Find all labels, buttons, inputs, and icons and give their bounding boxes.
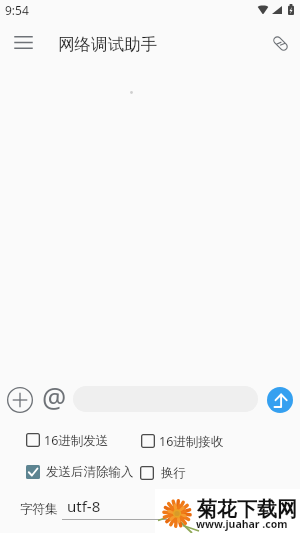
staticText: @: [42, 379, 67, 410]
button[interactable]: 16进制接收: [141, 431, 224, 451]
staticText: 网络调试助手: [58, 34, 157, 55]
staticText: 菊花下载网: [197, 497, 297, 522]
staticText: 16进制接收: [159, 433, 224, 450]
button[interactable]: Menu: [11, 30, 36, 55]
staticText: 发送后清除输入: [46, 464, 134, 480]
staticText: 9:54: [5, 2, 29, 18]
button[interactable]: At: [39, 379, 70, 410]
button[interactable]: 16进制发送: [26, 430, 109, 450]
staticText: 字符集: [20, 501, 58, 517]
staticText: www.juahar .com: [196, 517, 288, 531]
button[interactable]: Add: [3, 383, 36, 416]
staticText: 换行: [161, 465, 186, 481]
button[interactable]: 换行: [140, 463, 186, 483]
staticText: 16进制发送: [44, 432, 109, 449]
button[interactable]: Connect: [268, 31, 292, 55]
button[interactable]: 发送后清除输入: [26, 462, 134, 482]
button[interactable]: Send: [267, 387, 293, 413]
staticText: utf-8: [67, 496, 101, 516]
